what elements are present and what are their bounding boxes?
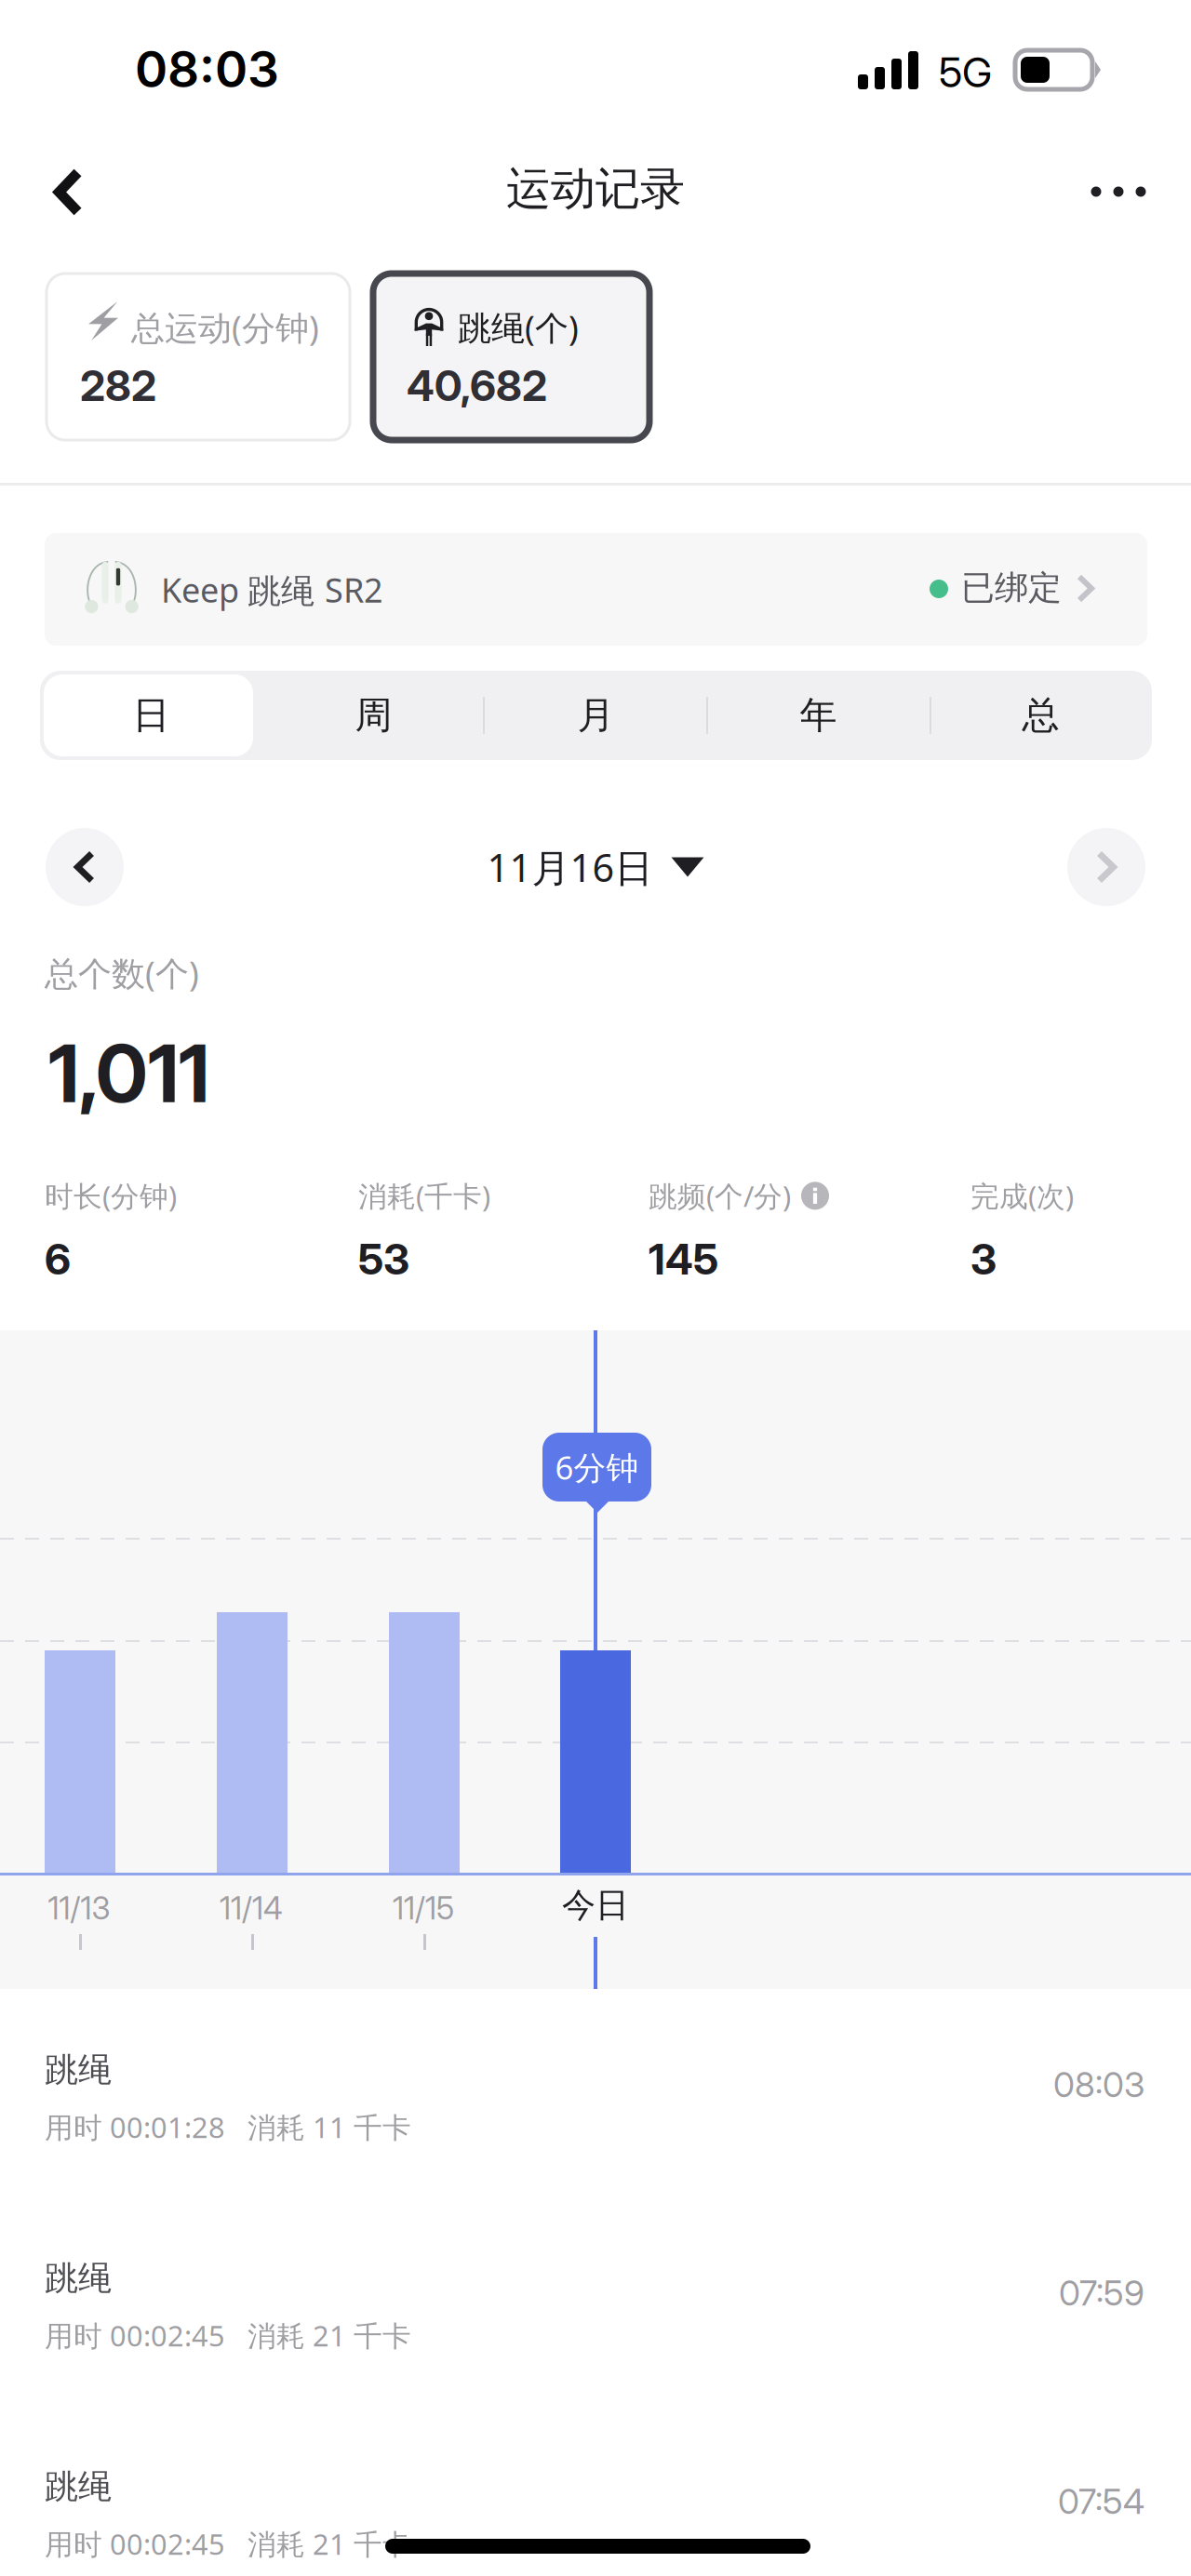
staticText: 运动记录	[506, 161, 685, 216]
staticText: 跳频(个/分)	[649, 1177, 791, 1215]
button[interactable]: Keep 跳绳 SR2	[45, 533, 1147, 646]
staticText: 07:54	[1058, 2480, 1144, 2522]
staticText: 总运动(分钟)	[131, 305, 319, 350]
staticText: 40,682	[407, 360, 547, 411]
button[interactable]: 总	[930, 671, 1152, 760]
button[interactable]: 跳绳	[0, 1989, 1191, 2197]
staticText: 07:59	[1059, 2272, 1144, 2314]
button[interactable]: 总运动(分钟)	[47, 274, 350, 440]
staticText: 今日	[562, 1885, 629, 1926]
button[interactable]: 跳绳	[0, 2197, 1191, 2406]
staticText: 53	[358, 1234, 409, 1285]
staticText: 11/15	[393, 1889, 454, 1927]
staticText: 282	[80, 360, 156, 411]
staticText: 08:03	[1053, 2063, 1144, 2105]
staticText: 月	[577, 693, 615, 738]
button[interactable]: 周	[262, 671, 485, 760]
staticText: 跳绳	[45, 2049, 112, 2091]
button[interactable]: 月	[485, 671, 707, 760]
staticText: 145	[649, 1234, 718, 1285]
staticText: 年	[800, 693, 837, 738]
button[interactable]: 跳绳(个)	[373, 274, 649, 440]
button[interactable]: Previous day	[46, 828, 124, 906]
button[interactable]: 11月16日	[447, 828, 744, 906]
staticText: 6分钟	[555, 1446, 639, 1488]
button[interactable]: More options	[1058, 136, 1179, 247]
button[interactable]: Back	[12, 130, 124, 242]
button[interactable]: 年	[707, 671, 930, 760]
staticText: 已绑定	[961, 567, 1062, 609]
staticText: 总	[1022, 693, 1059, 738]
button[interactable]: 运动记录	[456, 133, 735, 245]
staticText: 08:03	[135, 39, 279, 99]
staticText: 5G	[939, 47, 992, 97]
staticText: 跳绳	[45, 2258, 112, 2299]
staticText: 1,011	[48, 1025, 209, 1121]
staticText: 11/14	[220, 1889, 283, 1927]
button[interactable]: 跳绳	[0, 2406, 1191, 2576]
staticText: 消耗(千卡)	[358, 1177, 490, 1215]
staticText: 跳绳(个)	[458, 305, 579, 350]
staticText: Keep 跳绳 SR2	[161, 567, 383, 612]
staticText: 用时 00:02:45 消耗 21 千卡	[45, 2525, 411, 2563]
staticText: 6	[45, 1234, 71, 1285]
staticText: 11/13	[48, 1889, 110, 1927]
staticText: 总个数(个)	[45, 951, 199, 995]
staticText: 用时 00:01:28 消耗 11 千卡	[45, 2108, 411, 2146]
staticText: 时长(分钟)	[45, 1177, 177, 1215]
staticText: 跳绳	[45, 2466, 112, 2507]
staticText: 3	[970, 1234, 997, 1285]
staticText: 用时 00:02:45 消耗 21 千卡	[45, 2316, 411, 2354]
staticText: 日	[133, 693, 170, 738]
staticText: 完成(次)	[970, 1177, 1074, 1215]
button[interactable]: 日	[40, 671, 262, 760]
staticText: 11月16日	[487, 842, 653, 893]
staticText: 周	[355, 693, 392, 738]
button[interactable]: Next day	[1067, 828, 1145, 906]
